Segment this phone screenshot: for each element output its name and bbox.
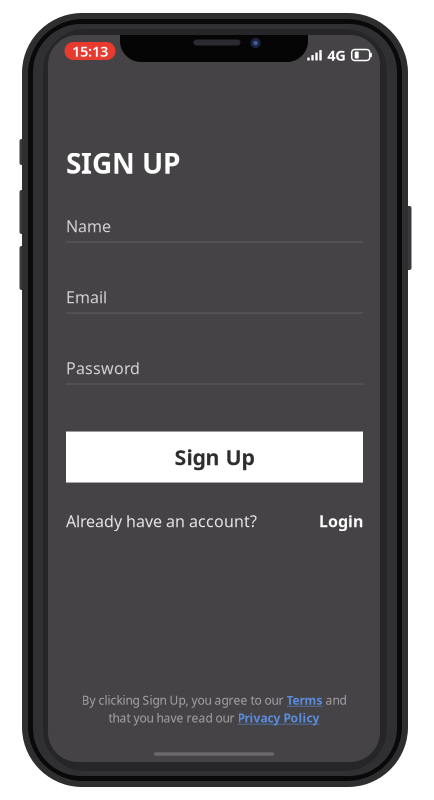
staticText: and	[322, 692, 346, 708]
button[interactable]: Terms	[286, 692, 322, 708]
staticText: that you have read our	[108, 710, 237, 726]
staticText: 4G	[327, 45, 346, 65]
staticText: Name	[66, 215, 111, 237]
staticText: Password	[66, 357, 140, 379]
staticText: By clicking Sign Up, you agree to our	[81, 692, 286, 708]
staticText: Login	[319, 510, 363, 532]
staticText: SIGN UP	[66, 144, 180, 182]
staticText: Privacy Policy	[237, 710, 319, 726]
button[interactable]: Privacy Policy	[237, 710, 319, 726]
button[interactable]: Login	[319, 510, 363, 532]
staticText: 15:13	[72, 41, 108, 61]
staticText: Terms	[286, 692, 322, 708]
button[interactable]: Sign Up	[66, 431, 363, 482]
staticText: Email	[66, 286, 107, 308]
staticText: Already have an account?	[66, 510, 257, 532]
staticText: Sign Up	[174, 443, 254, 471]
